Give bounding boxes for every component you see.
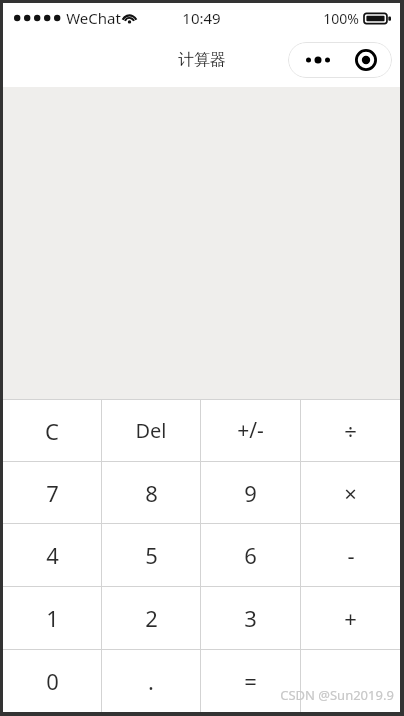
staticText: 10:49 bbox=[182, 8, 221, 28]
staticText: WeChat bbox=[66, 8, 121, 28]
button[interactable]: 2 bbox=[102, 587, 200, 649]
button[interactable]: 6 bbox=[201, 524, 300, 586]
staticText: 6 bbox=[244, 540, 257, 570]
staticText: . bbox=[148, 666, 154, 696]
staticText: +/- bbox=[237, 416, 264, 445]
staticText: CSDN @Sun2019.9 bbox=[280, 686, 394, 704]
staticText: 2 bbox=[145, 603, 158, 633]
button[interactable]: C bbox=[3, 400, 101, 461]
staticText: 9 bbox=[244, 478, 257, 508]
button[interactable]: × bbox=[301, 462, 400, 523]
button[interactable]: 8 bbox=[102, 462, 200, 523]
staticText: 3 bbox=[244, 603, 257, 633]
staticText: 1 bbox=[46, 603, 59, 633]
staticText: 计算器 bbox=[178, 50, 226, 70]
staticText: Del bbox=[135, 417, 167, 444]
staticText: 7 bbox=[46, 478, 59, 508]
button[interactable]: 0 bbox=[3, 650, 101, 712]
button[interactable]: Del bbox=[102, 400, 200, 461]
staticText: × bbox=[344, 478, 357, 508]
button[interactable]: = bbox=[201, 650, 300, 712]
button[interactable]: 9 bbox=[201, 462, 300, 523]
button[interactable]: 5 bbox=[102, 524, 200, 586]
button[interactable]: - bbox=[301, 524, 400, 586]
button[interactable]: . bbox=[102, 650, 200, 712]
staticText: 0 bbox=[46, 666, 59, 696]
button[interactable]: 1 bbox=[3, 587, 101, 649]
staticText: 5 bbox=[145, 540, 158, 570]
button[interactable]: 7 bbox=[3, 462, 101, 523]
staticText: C bbox=[45, 416, 59, 446]
button[interactable]: 4 bbox=[3, 524, 101, 586]
button[interactable]: 3 bbox=[201, 587, 300, 649]
staticText: - bbox=[347, 540, 355, 570]
button[interactable]: ÷ bbox=[301, 400, 400, 461]
button[interactable]: +/- bbox=[201, 400, 300, 461]
button[interactable]: + bbox=[301, 587, 400, 649]
staticText: 4 bbox=[46, 540, 59, 570]
staticText: = bbox=[244, 666, 257, 696]
staticText: + bbox=[344, 603, 357, 633]
staticText: 8 bbox=[145, 478, 158, 508]
button[interactable]: Close mini program bbox=[349, 43, 383, 77]
button[interactable]: More options bbox=[297, 43, 339, 77]
staticText: 100% bbox=[323, 9, 359, 28]
staticText: ÷ bbox=[344, 416, 357, 446]
